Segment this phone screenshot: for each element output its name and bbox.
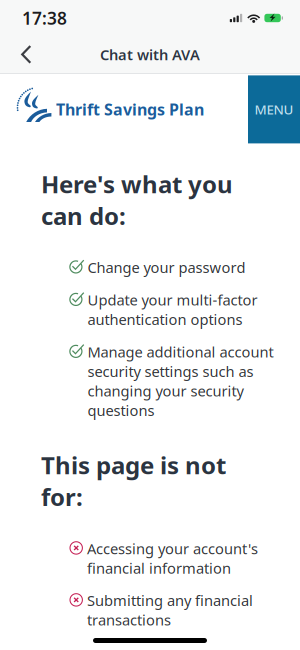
staticText: Here's what you can do: — [41, 168, 233, 232]
staticText: 17:38 — [22, 6, 67, 29]
staticText: Chat with AVA — [100, 45, 200, 64]
staticText: Thrift Savings Plan — [56, 99, 204, 120]
button[interactable]: Back — [5, 36, 47, 73]
staticText: Accessing your account's financial infor… — [87, 539, 258, 578]
staticText: Update your multi-factor authentication … — [87, 290, 257, 329]
staticText: MENU — [254, 100, 293, 118]
button[interactable]: MENU — [248, 75, 300, 143]
staticText: Submitting any financial transactions — [87, 591, 253, 630]
staticText: This page is not for: — [41, 449, 226, 513]
staticText: Change your password — [87, 258, 245, 277]
staticText: Manage additional account security setti… — [87, 342, 273, 420]
